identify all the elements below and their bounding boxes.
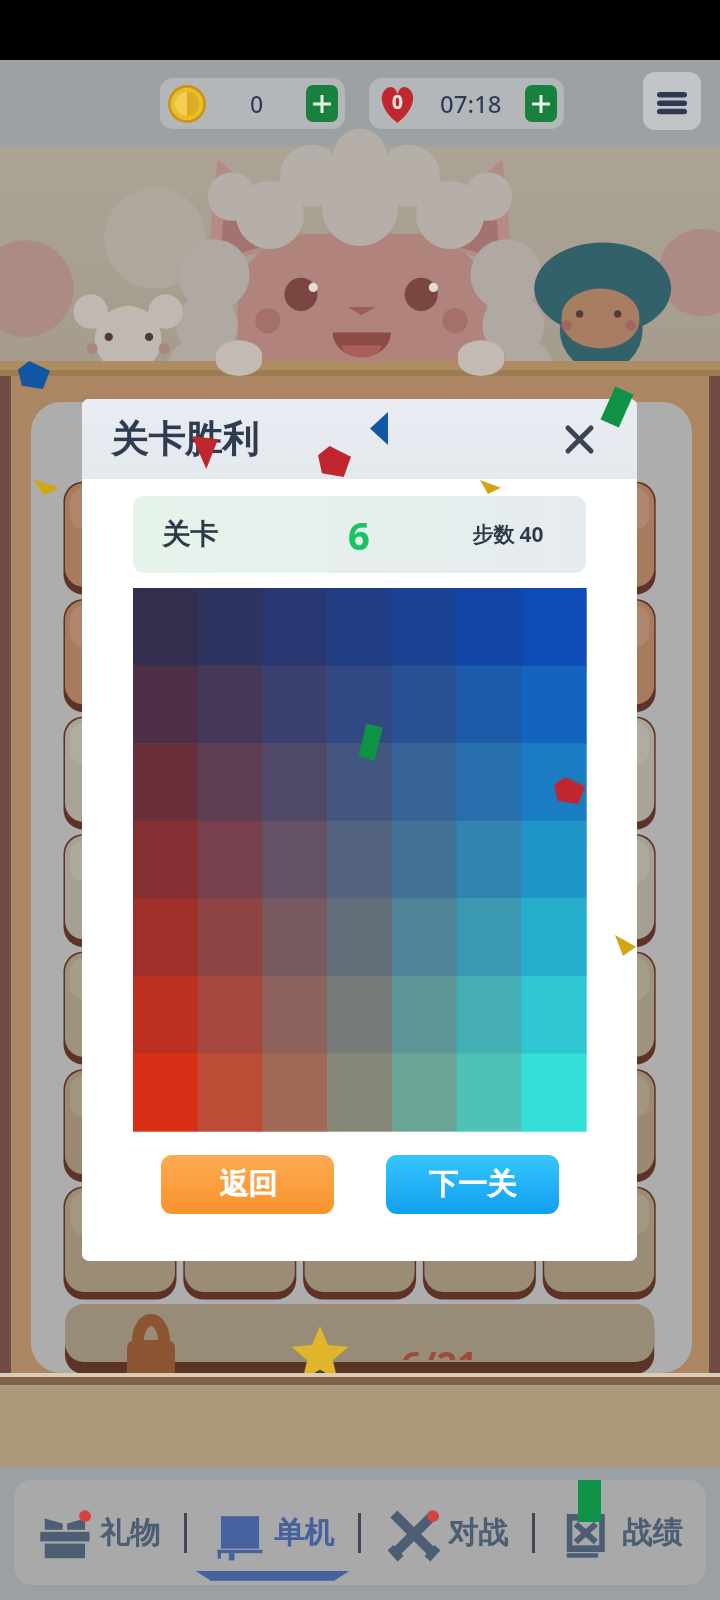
staticText: 返回 [219, 1166, 277, 1203]
staticText: 关卡 [162, 517, 218, 552]
staticText: 0 [392, 89, 403, 115]
staticText: 步数 40 [472, 520, 544, 549]
button[interactable]: 返回 [161, 1155, 334, 1214]
button[interactable]: 礼物 [14, 1480, 184, 1585]
button[interactable]: Add coins [306, 85, 338, 122]
button[interactable]: 单机 [187, 1480, 358, 1585]
staticText: 0 [250, 88, 264, 119]
staticText: 对战 [448, 1514, 508, 1552]
staticText: 单机 [274, 1514, 334, 1552]
button[interactable]: Add lives [525, 85, 557, 122]
button[interactable]: 0 [369, 78, 564, 129]
button[interactable]: Menu [643, 72, 701, 130]
staticText: 战绩 [622, 1514, 682, 1552]
staticText: 下一关 [429, 1166, 516, 1203]
button[interactable]: 对战 [361, 1480, 532, 1585]
staticText: 6 [348, 509, 370, 561]
staticText: 07:18 [440, 87, 502, 120]
button[interactable]: 下一关 [386, 1155, 559, 1214]
button[interactable]: 0 [160, 78, 345, 129]
button[interactable]: 战绩 [535, 1480, 706, 1585]
staticText: 关卡胜利 [111, 416, 259, 463]
staticText: 6/21 [401, 1340, 478, 1360]
staticText: 礼物 [100, 1514, 160, 1552]
button[interactable]: Close [557, 417, 601, 461]
